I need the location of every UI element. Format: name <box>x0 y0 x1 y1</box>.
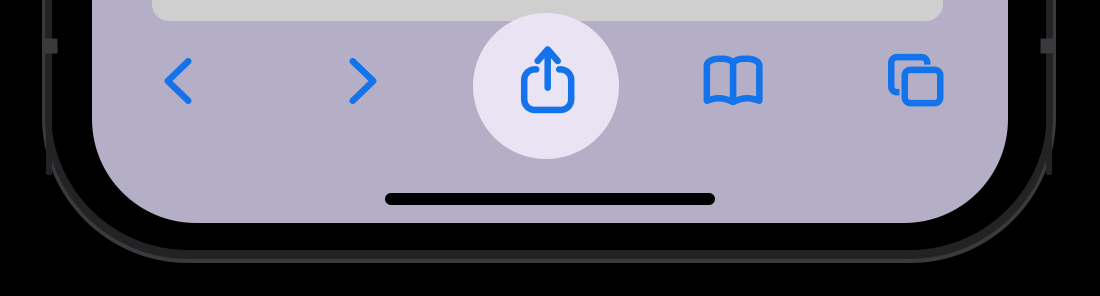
button[interactable]: Share <box>473 13 619 159</box>
button[interactable]: Forward <box>315 33 411 129</box>
button[interactable]: Tabs <box>868 33 964 129</box>
button[interactable]: Back <box>130 33 226 129</box>
button[interactable]: Bookmarks <box>685 32 781 128</box>
